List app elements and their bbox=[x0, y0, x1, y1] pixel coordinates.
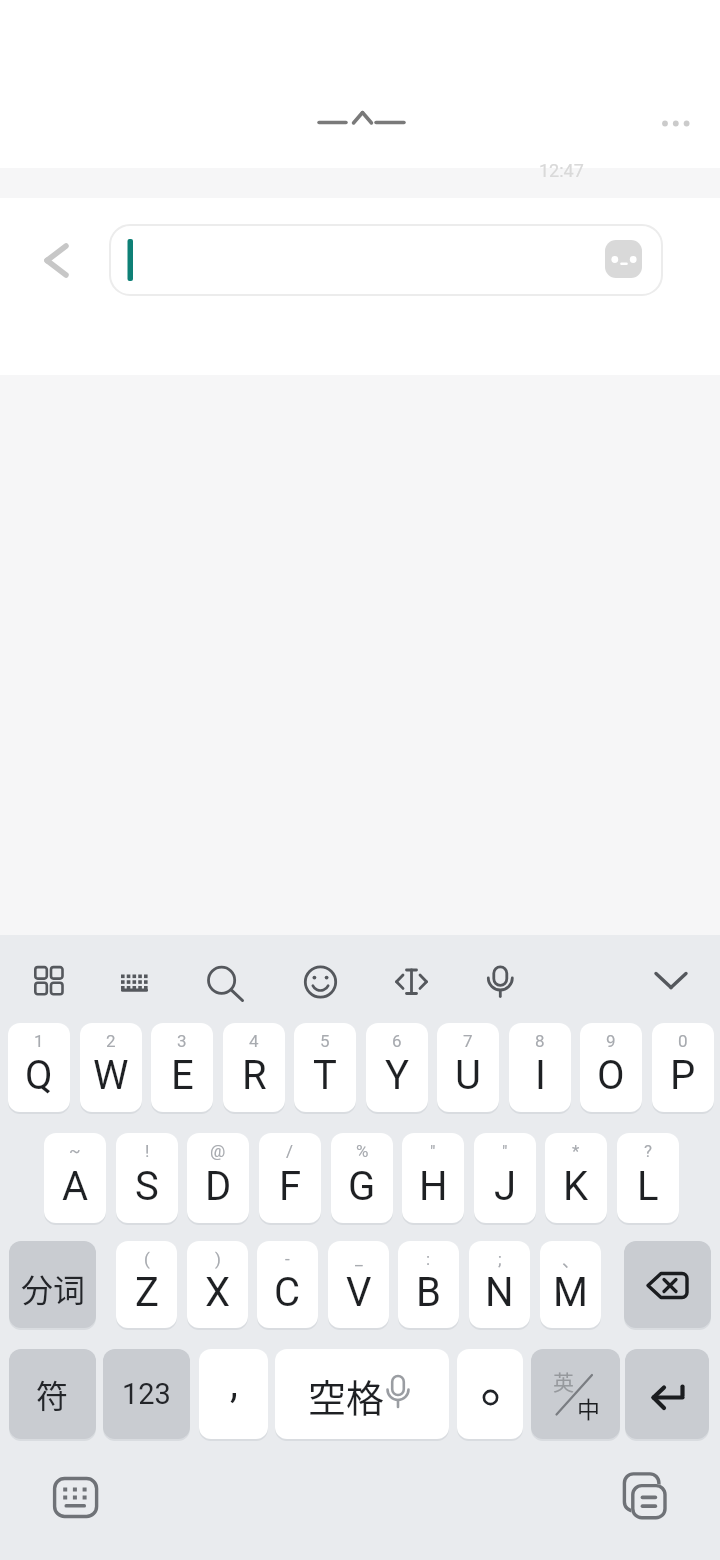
staticText: 6 bbox=[392, 1031, 402, 1051]
staticText: 英 bbox=[553, 1366, 574, 1396]
staticText: % bbox=[356, 1141, 369, 1161]
staticText: 8 bbox=[535, 1031, 545, 1051]
staticText: 空格 bbox=[308, 1368, 385, 1423]
button[interactable] bbox=[531, 1349, 620, 1439]
button[interactable] bbox=[294, 1023, 356, 1112]
staticText: 9 bbox=[606, 1031, 616, 1051]
staticText: H bbox=[419, 1163, 448, 1210]
staticText: R bbox=[242, 1052, 267, 1099]
staticText: : bbox=[426, 1249, 431, 1269]
button[interactable] bbox=[20, 952, 78, 1010]
staticText: S bbox=[135, 1163, 159, 1210]
button[interactable]: 符 bbox=[9, 1349, 96, 1439]
staticText: W bbox=[93, 1052, 129, 1099]
button[interactable] bbox=[80, 1023, 142, 1112]
staticText: " bbox=[502, 1141, 508, 1161]
staticText: 中 bbox=[577, 1391, 600, 1423]
button[interactable] bbox=[402, 1133, 464, 1223]
staticText: I bbox=[535, 1052, 546, 1099]
button[interactable] bbox=[110, 225, 662, 295]
button[interactable] bbox=[48, 1468, 104, 1524]
staticText: Q bbox=[25, 1052, 53, 1099]
button[interactable] bbox=[223, 1023, 285, 1112]
button[interactable] bbox=[187, 1241, 248, 1328]
button[interactable] bbox=[331, 1133, 393, 1223]
button[interactable] bbox=[275, 1349, 449, 1439]
staticText: E bbox=[171, 1052, 194, 1099]
button[interactable] bbox=[366, 1023, 428, 1112]
staticText: X bbox=[205, 1269, 231, 1316]
staticText: , bbox=[230, 1360, 238, 1407]
button[interactable] bbox=[328, 1241, 389, 1328]
button[interactable] bbox=[107, 952, 165, 1010]
button[interactable] bbox=[617, 1133, 679, 1223]
button[interactable] bbox=[642, 952, 700, 1010]
button[interactable] bbox=[474, 952, 532, 1010]
button[interactable] bbox=[540, 1241, 601, 1328]
button[interactable] bbox=[300, 95, 420, 150]
button[interactable] bbox=[580, 1023, 642, 1112]
button[interactable] bbox=[30, 235, 85, 290]
button[interactable] bbox=[652, 1023, 714, 1112]
staticText: M bbox=[553, 1269, 588, 1316]
staticText: 符 bbox=[36, 1371, 69, 1417]
staticText: - bbox=[285, 1249, 290, 1269]
button[interactable] bbox=[645, 100, 707, 148]
staticText: O bbox=[597, 1052, 625, 1099]
staticText: ( bbox=[144, 1249, 150, 1269]
staticText: _ bbox=[355, 1249, 363, 1269]
button[interactable] bbox=[259, 1133, 321, 1223]
staticText: ! bbox=[145, 1141, 150, 1161]
staticText: 1 bbox=[34, 1031, 44, 1051]
staticText: Y bbox=[385, 1052, 410, 1099]
staticText: F bbox=[279, 1163, 302, 1210]
staticText: A bbox=[62, 1163, 89, 1210]
button[interactable] bbox=[596, 232, 652, 288]
button[interactable] bbox=[116, 1133, 178, 1223]
staticText: D bbox=[205, 1163, 232, 1210]
button[interactable] bbox=[151, 1023, 213, 1112]
staticText: C bbox=[274, 1269, 301, 1316]
button[interactable] bbox=[291, 952, 349, 1010]
button[interactable] bbox=[624, 1241, 711, 1328]
staticText: ? bbox=[644, 1141, 653, 1161]
button[interactable] bbox=[437, 1023, 499, 1112]
staticText: K bbox=[563, 1163, 589, 1210]
staticText: V bbox=[346, 1269, 372, 1316]
button[interactable] bbox=[457, 1349, 523, 1439]
staticText: N bbox=[485, 1269, 514, 1316]
staticText: 0 bbox=[678, 1031, 688, 1051]
button[interactable] bbox=[509, 1023, 571, 1112]
staticText: 分词 bbox=[21, 1265, 86, 1311]
staticText: @ bbox=[210, 1141, 226, 1161]
button[interactable] bbox=[474, 1133, 536, 1223]
button[interactable] bbox=[545, 1133, 607, 1223]
staticText: 12:47 bbox=[539, 160, 584, 181]
button[interactable]: , bbox=[199, 1349, 268, 1439]
button[interactable] bbox=[187, 1133, 249, 1223]
staticText: * bbox=[572, 1141, 580, 1161]
button[interactable]: 123 bbox=[103, 1349, 190, 1439]
button[interactable] bbox=[398, 1241, 459, 1328]
staticText: L bbox=[637, 1163, 659, 1210]
button[interactable]: 分词 bbox=[9, 1241, 96, 1328]
staticText: 、 bbox=[562, 1247, 579, 1271]
staticText: 4 bbox=[249, 1031, 259, 1051]
staticText: 2 bbox=[106, 1031, 116, 1051]
button[interactable] bbox=[198, 952, 256, 1010]
staticText: ~ bbox=[69, 1141, 81, 1161]
button[interactable] bbox=[382, 952, 440, 1010]
button[interactable] bbox=[469, 1241, 530, 1328]
button[interactable] bbox=[44, 1133, 106, 1223]
button[interactable] bbox=[116, 1241, 177, 1328]
button[interactable] bbox=[625, 1349, 709, 1439]
staticText: 5 bbox=[320, 1031, 330, 1051]
staticText: J bbox=[494, 1163, 517, 1210]
staticText: Z bbox=[135, 1269, 159, 1316]
button[interactable] bbox=[617, 1468, 673, 1524]
button[interactable] bbox=[257, 1241, 318, 1328]
staticText: 3 bbox=[177, 1031, 187, 1051]
button[interactable] bbox=[8, 1023, 70, 1112]
staticText: " bbox=[430, 1141, 436, 1161]
staticText: U bbox=[455, 1052, 481, 1099]
